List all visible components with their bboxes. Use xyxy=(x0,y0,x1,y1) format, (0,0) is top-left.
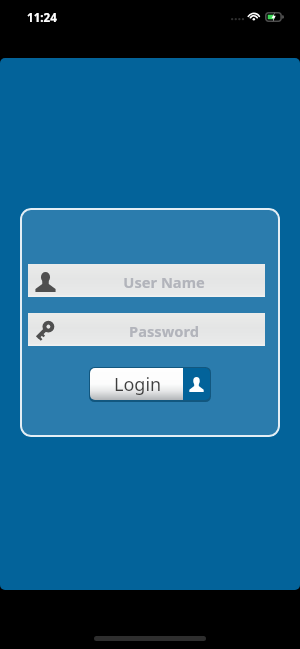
button[interactable]: Login xyxy=(90,368,210,400)
staticText: Password xyxy=(129,321,199,341)
button[interactable]: User name field xyxy=(28,264,265,297)
staticText: User Name xyxy=(123,272,205,292)
button[interactable]: Password field xyxy=(28,313,265,346)
staticText: 11:24 xyxy=(27,10,57,26)
staticText: Login xyxy=(114,372,162,397)
